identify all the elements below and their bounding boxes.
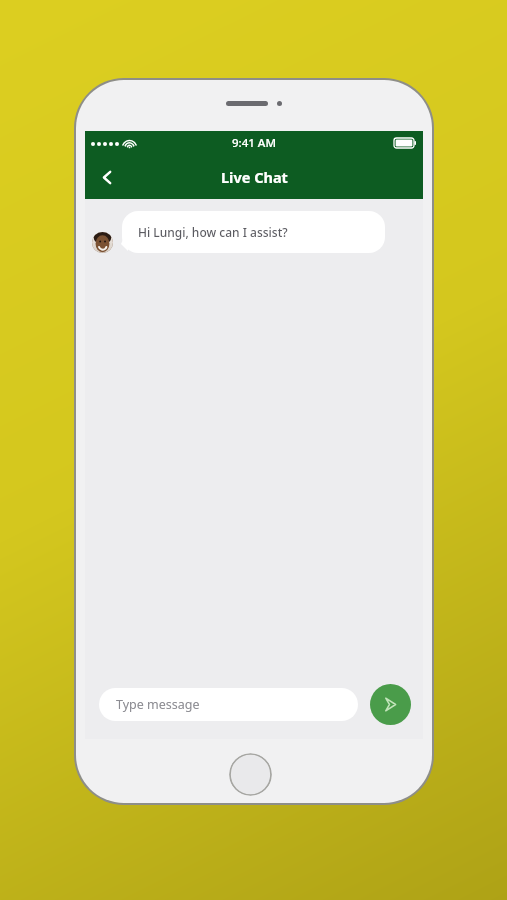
staticText: 9:41 AM	[232, 135, 276, 151]
button[interactable]: Back	[85, 155, 129, 199]
staticText: Hi Lungi, how can I assist?	[138, 224, 288, 240]
button[interactable]: Hi Lungi, how can I assist?	[122, 211, 385, 253]
staticText: Live Chat	[221, 167, 288, 187]
button[interactable]: Type message	[99, 688, 358, 721]
button[interactable]: Send	[370, 684, 411, 725]
staticText: Type message	[116, 696, 200, 713]
button[interactable]: Home	[229, 753, 272, 796]
